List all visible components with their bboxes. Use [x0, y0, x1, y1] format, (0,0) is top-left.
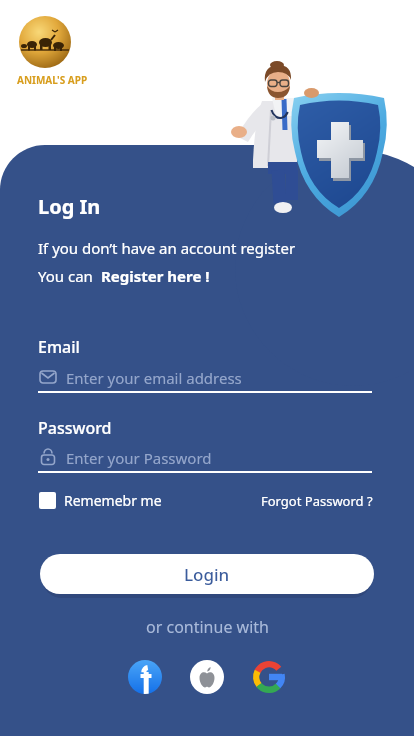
- button[interactable]: Forgot Password ?: [261, 492, 373, 510]
- button[interactable]: Enter your Password: [38, 442, 372, 474]
- button[interactable]: Enter your email address: [38, 362, 372, 394]
- button[interactable]: [252, 660, 286, 694]
- staticText: Login: [184, 563, 230, 586]
- staticText: Enter your Password: [66, 448, 212, 468]
- button[interactable]: [128, 660, 162, 694]
- staticText: ANIMAL'S APP: [17, 73, 88, 87]
- button[interactable]: Rememebr me: [39, 491, 162, 510]
- button[interactable]: Login: [40, 554, 374, 594]
- button[interactable]: Register here !: [101, 266, 210, 286]
- staticText: Password: [38, 417, 112, 439]
- staticText: Rememebr me: [64, 491, 162, 510]
- button[interactable]: [190, 660, 224, 694]
- staticText: You can: [38, 266, 101, 286]
- staticText: Enter your email address: [66, 368, 242, 388]
- staticText: Email: [38, 336, 80, 358]
- staticText: If you don’t have an account register: [38, 238, 296, 258]
- staticText: or continue with: [146, 616, 269, 638]
- staticText: Log In: [38, 193, 101, 220]
